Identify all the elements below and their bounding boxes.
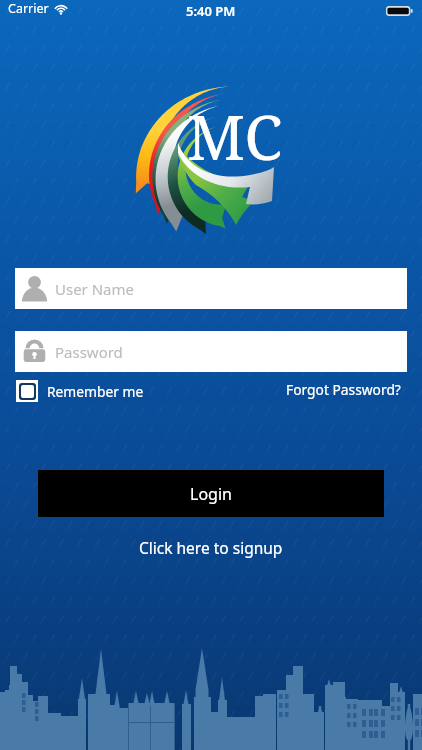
button[interactable]: Password: [15, 331, 407, 372]
staticText: Login: [190, 483, 232, 505]
staticText: Password: [55, 342, 123, 362]
staticText: 5:40 PM: [186, 2, 236, 20]
staticText: Remember me: [47, 382, 144, 401]
staticText: Carrier: [8, 0, 49, 17]
button[interactable]: Forgot Password?: [286, 377, 401, 401]
button[interactable]: Remember me: [16, 378, 144, 404]
staticText: User Name: [55, 279, 135, 299]
button[interactable]: Login: [38, 470, 384, 517]
staticText: Click here to signup: [139, 537, 283, 558]
button[interactable]: User Name: [15, 268, 407, 309]
staticText: Forgot Password?: [286, 380, 401, 399]
staticText: MC: [187, 94, 282, 178]
button[interactable]: Click here to signup: [139, 537, 283, 558]
